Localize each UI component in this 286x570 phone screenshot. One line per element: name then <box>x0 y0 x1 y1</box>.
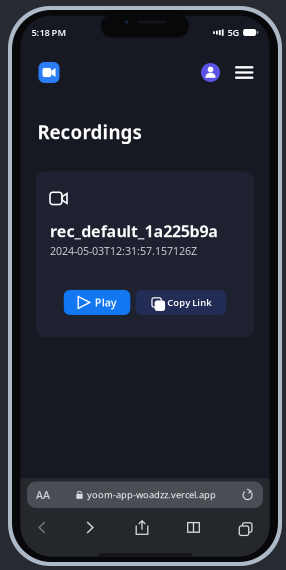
button[interactable]: Tabs <box>219 508 269 547</box>
button[interactable]: Forward <box>64 508 116 547</box>
button[interactable]: Menu <box>235 66 253 79</box>
button[interactable]: Back <box>20 508 64 547</box>
button[interactable]: Bookmarks <box>168 508 219 547</box>
button[interactable]: Account <box>201 63 220 82</box>
staticText: 5G <box>228 26 240 39</box>
staticText: AA <box>36 488 50 502</box>
staticText: 2024-05-03T12:31:57.157126Z <box>50 244 197 258</box>
staticText: Copy Link <box>167 296 211 309</box>
staticText: yoom-app-woadzz.vercel.app <box>87 489 216 501</box>
staticText: 5:18 PM <box>31 26 66 39</box>
staticText: Play <box>95 295 117 310</box>
button[interactable]: Play <box>64 290 130 315</box>
button[interactable]: Copy Link <box>135 290 226 315</box>
staticText: Recordings <box>37 119 141 144</box>
staticText: rec_default_1a225b9a <box>50 220 218 242</box>
button[interactable]: Share <box>116 508 168 547</box>
button[interactable]: Yoom home <box>38 62 59 83</box>
button[interactable]: AA <box>27 481 263 508</box>
